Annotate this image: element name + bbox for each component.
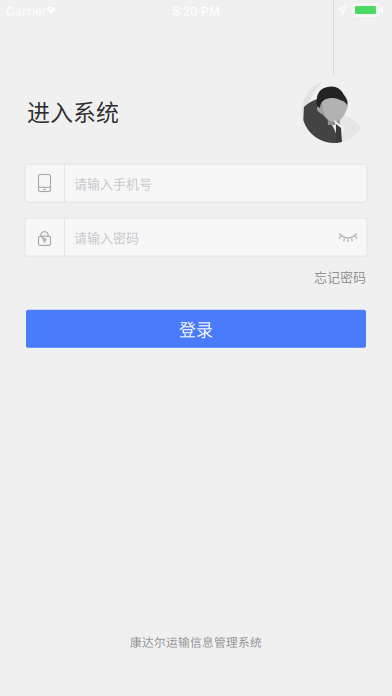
staticText: Carrier <box>6 4 47 18</box>
staticText: 进入系统 <box>27 94 119 128</box>
staticText: 忘记密码 <box>314 267 366 286</box>
staticText: 5:20 PM <box>172 4 220 18</box>
staticText: 登录 <box>179 316 213 341</box>
staticText: 请输入手机号 <box>74 174 152 192</box>
staticText: 请输入密码 <box>74 228 139 246</box>
staticText: 康达尔运输信息管理系统 <box>130 633 262 650</box>
button[interactable]: 忘记密码 <box>314 263 366 290</box>
button[interactable]: 登录 <box>26 310 366 348</box>
button[interactable]: Show password <box>333 218 363 256</box>
